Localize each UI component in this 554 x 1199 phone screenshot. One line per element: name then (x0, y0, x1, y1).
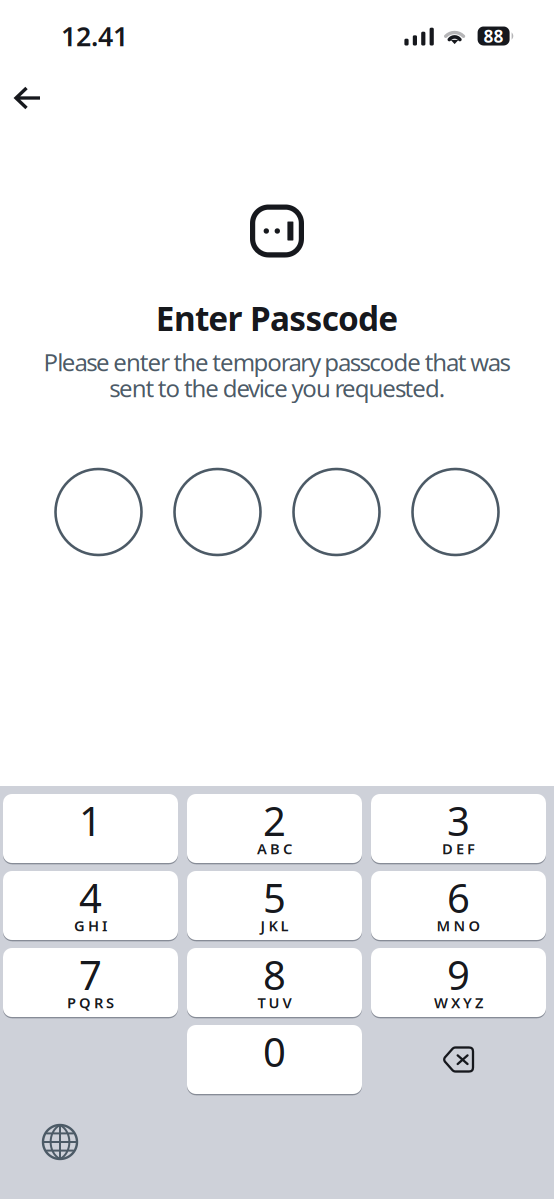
staticText: JKL (260, 916, 288, 935)
staticText: 9 (447, 948, 470, 1001)
staticText: 88 (484, 24, 504, 47)
button[interactable]: 4 (3, 871, 178, 940)
staticText: 0 (263, 1025, 286, 1078)
staticText: 2 (263, 794, 286, 847)
button[interactable]: 3 (371, 794, 546, 863)
button[interactable]: Next keyboard (34, 1115, 86, 1169)
staticText: MNO (436, 916, 480, 935)
staticText: WXYZ (434, 993, 483, 1012)
staticText: 5 (263, 871, 286, 924)
staticText: Enter Passcode (156, 296, 398, 340)
staticText: 7 (79, 948, 102, 1001)
staticText: ABC (257, 839, 292, 858)
button[interactable]: 1 (3, 794, 178, 863)
staticText: PQRS (67, 993, 114, 1012)
button[interactable]: 9 (371, 948, 546, 1017)
button[interactable]: 2 (187, 794, 362, 863)
button[interactable]: Delete (371, 1025, 546, 1094)
staticText: TUV (257, 993, 291, 1012)
staticText: 6 (447, 871, 470, 924)
staticText: sent to the device you requested. (109, 372, 445, 404)
staticText: Please enter the temporary passcode that… (43, 346, 510, 378)
button[interactable]: 7 (3, 948, 178, 1017)
staticText: DEF (442, 839, 475, 858)
button[interactable]: 8 (187, 948, 362, 1017)
staticText: 4 (79, 871, 102, 924)
staticText: GHI (74, 916, 107, 935)
button[interactable]: 6 (371, 871, 546, 940)
staticText: 12.41 (61, 18, 128, 54)
staticText: 8 (263, 948, 286, 1001)
button[interactable]: 0 (187, 1025, 362, 1094)
button[interactable]: Back (0, 71, 56, 124)
staticText: 1 (79, 794, 102, 847)
staticText: 3 (447, 794, 470, 847)
button[interactable]: 5 (187, 871, 362, 940)
